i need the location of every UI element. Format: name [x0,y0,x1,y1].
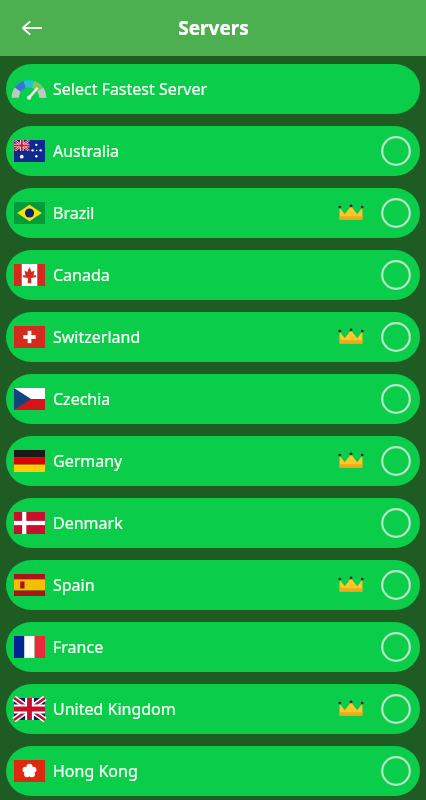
staticText: Select Fastest Server [53,78,208,100]
button[interactable]: Select Australia [376,131,416,171]
button[interactable]: Select Czechia [376,379,416,419]
button[interactable]: Back [10,6,54,50]
staticText: Switzerland [53,326,141,348]
button[interactable]: Canada [6,250,420,300]
staticText: France [53,636,104,658]
button[interactable]: Czechia [6,374,420,424]
button[interactable]: Select France [376,627,416,667]
staticText: Australia [53,140,120,162]
button[interactable]: France [6,622,420,672]
button[interactable]: Select Spain [376,565,416,605]
button[interactable]: Hong Kong [6,746,420,796]
button[interactable]: Brazil [6,188,420,238]
staticText: Denmark [53,512,123,534]
button[interactable]: Denmark [6,498,420,548]
staticText: Germany [53,450,123,472]
button[interactable]: Select Hong Kong [376,751,416,791]
button[interactable]: Select United Kingdom [376,689,416,729]
button[interactable]: Select Canada [376,255,416,295]
staticText: Canada [53,264,110,286]
button[interactable]: Germany [6,436,420,486]
button[interactable]: Select Germany [376,441,416,481]
button[interactable]: Select Fastest Server [6,64,420,114]
staticText: Brazil [53,202,95,224]
button[interactable]: Switzerland [6,312,420,362]
staticText: Spain [53,574,95,596]
staticText: Servers [178,15,249,41]
button[interactable]: Australia [6,126,420,176]
staticText: United Kingdom [53,698,176,720]
button[interactable]: United Kingdom [6,684,420,734]
button[interactable]: Spain [6,560,420,610]
button[interactable]: Select Switzerland [376,317,416,357]
staticText: Czechia [53,388,111,410]
staticText: Hong Kong [53,760,138,782]
button[interactable]: Select Brazil [376,193,416,233]
button[interactable]: Select Denmark [376,503,416,543]
